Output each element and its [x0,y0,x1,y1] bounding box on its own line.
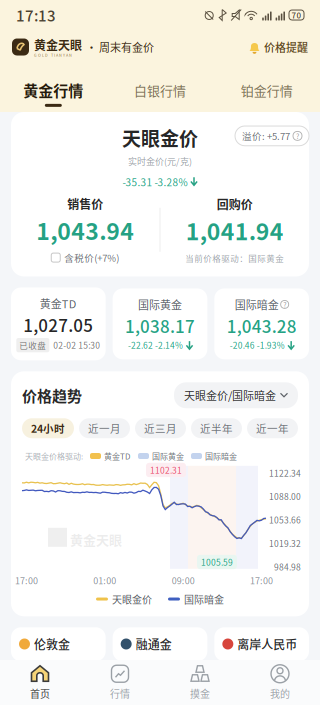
staticText: 伦敦金 [34,635,70,653]
staticText: 黄金TD [40,295,77,311]
staticText: 行情 [110,686,130,701]
button[interactable]: 国际暗金 [214,288,309,359]
staticText: 我的 [270,686,290,701]
staticText: 1102.31 [150,464,182,476]
staticText: 黄金TD [104,450,131,462]
staticText: 国际暗金 [235,296,279,312]
button[interactable]: 溢价: +5.77 [235,126,309,146]
staticText: 铂金行情 [241,81,293,99]
staticText: 1,041.94 [186,214,284,247]
staticText: -22.62 -2.14% [128,339,183,351]
staticText: 国际暗金 [184,592,224,606]
button[interactable]: 24小时 [22,418,74,438]
staticText: 近三月 [144,421,177,436]
button[interactable]: 价格提醒 [248,39,308,55]
staticText: 近一年 [256,421,289,436]
button[interactable]: 近一年 [247,418,298,438]
button[interactable]: 首页 [0,664,80,701]
staticText: 近一月 [88,421,121,436]
staticText: 近半年 [200,421,233,436]
staticText: 天眼金价格驱动: [25,450,83,462]
staticText: 黄金天眼 [34,36,82,53]
button[interactable]: 黄金TD [11,287,106,360]
staticText: 回购价 [217,195,253,213]
staticText: 09:00 [172,574,195,587]
button[interactable]: 铂金行情 [213,71,320,105]
staticText: 价格提醒 [264,39,308,55]
staticText: 6.9891 [222,657,271,678]
staticText: 实时金价(元/克) [128,154,192,167]
staticText: 黄金天眼 [70,530,122,549]
staticText: 融通金 [136,635,172,653]
staticText: 4,445.85 [19,657,81,678]
staticText: 70 [291,9,301,21]
button[interactable]: 摸金 [160,664,240,701]
staticText: 1005.59 [201,556,233,568]
button[interactable]: 天眼金价/国际暗金 [174,382,298,408]
staticText: 当前价格驱动：国际黄金 [185,252,284,264]
staticText: 价格趋势 [22,384,82,406]
staticText: 已收盘 [19,339,46,351]
button[interactable]: 近三月 [135,418,186,438]
staticText: -20.46 -1.93% [230,339,285,351]
staticText: 黄金行情 [23,79,83,101]
button[interactable]: 行情 [80,664,160,701]
staticText: 1,038.17 [125,313,195,338]
staticText: 国际黄金 [152,450,184,462]
staticText: 1,045.85 [121,657,183,678]
staticText: · 周末有金价 [84,39,154,55]
button[interactable]: 离岸人民币 [214,627,309,661]
button[interactable]: 白银行情 [107,71,213,105]
staticText: 984.98 [274,560,301,573]
staticText: 17:00 [250,574,273,587]
staticText: 1053.66 [269,514,301,526]
staticText: G O L D T I A N Y A N [34,52,72,58]
staticText: 24小时 [31,421,65,436]
button[interactable]: 我的 [240,664,320,701]
staticText: 白银行情 [134,81,186,99]
staticText: 1088.00 [269,490,301,502]
staticText: 国际暗金 [205,450,237,462]
staticText: 含税价(+7%) [64,251,119,264]
staticText: 1122.34 [269,467,301,479]
staticText: 天眼金价/国际暗金 [184,387,276,403]
staticText: 销售价 [67,195,103,212]
staticText: 1,027.05 [23,312,93,337]
button[interactable]: 伦敦金 [11,627,106,661]
staticText: 02-02 15:30 [53,339,100,351]
staticText: 01:00 [93,574,116,587]
staticText: 1,043.28 [227,313,297,338]
button[interactable]: 近一月 [79,418,130,438]
button[interactable]: 融通金 [113,627,207,661]
button[interactable]: 含税价(+7%) [51,251,119,264]
staticText: 1,043.94 [36,213,134,247]
staticText: 天眼金价 [122,124,198,151]
staticText: 溢价: +5.77 [242,129,290,143]
staticText: 1019.32 [269,537,301,549]
staticText: 国际黄金 [138,296,182,312]
staticText: 17:13 [16,4,56,26]
staticText: ? [283,299,286,309]
staticText: 摸金 [190,686,210,701]
button[interactable]: 黄金行情 [0,69,107,107]
staticText: 首页 [30,686,50,701]
staticText: -35.31 -3.28% [122,174,187,189]
staticText: 天眼金价 [112,592,152,606]
staticText: 17:00 [15,574,38,587]
button[interactable]: 近半年 [191,418,242,438]
staticText: ? [296,131,299,141]
button[interactable]: 国际黄金 [113,288,207,359]
staticText: 离岸人民币 [237,635,297,653]
